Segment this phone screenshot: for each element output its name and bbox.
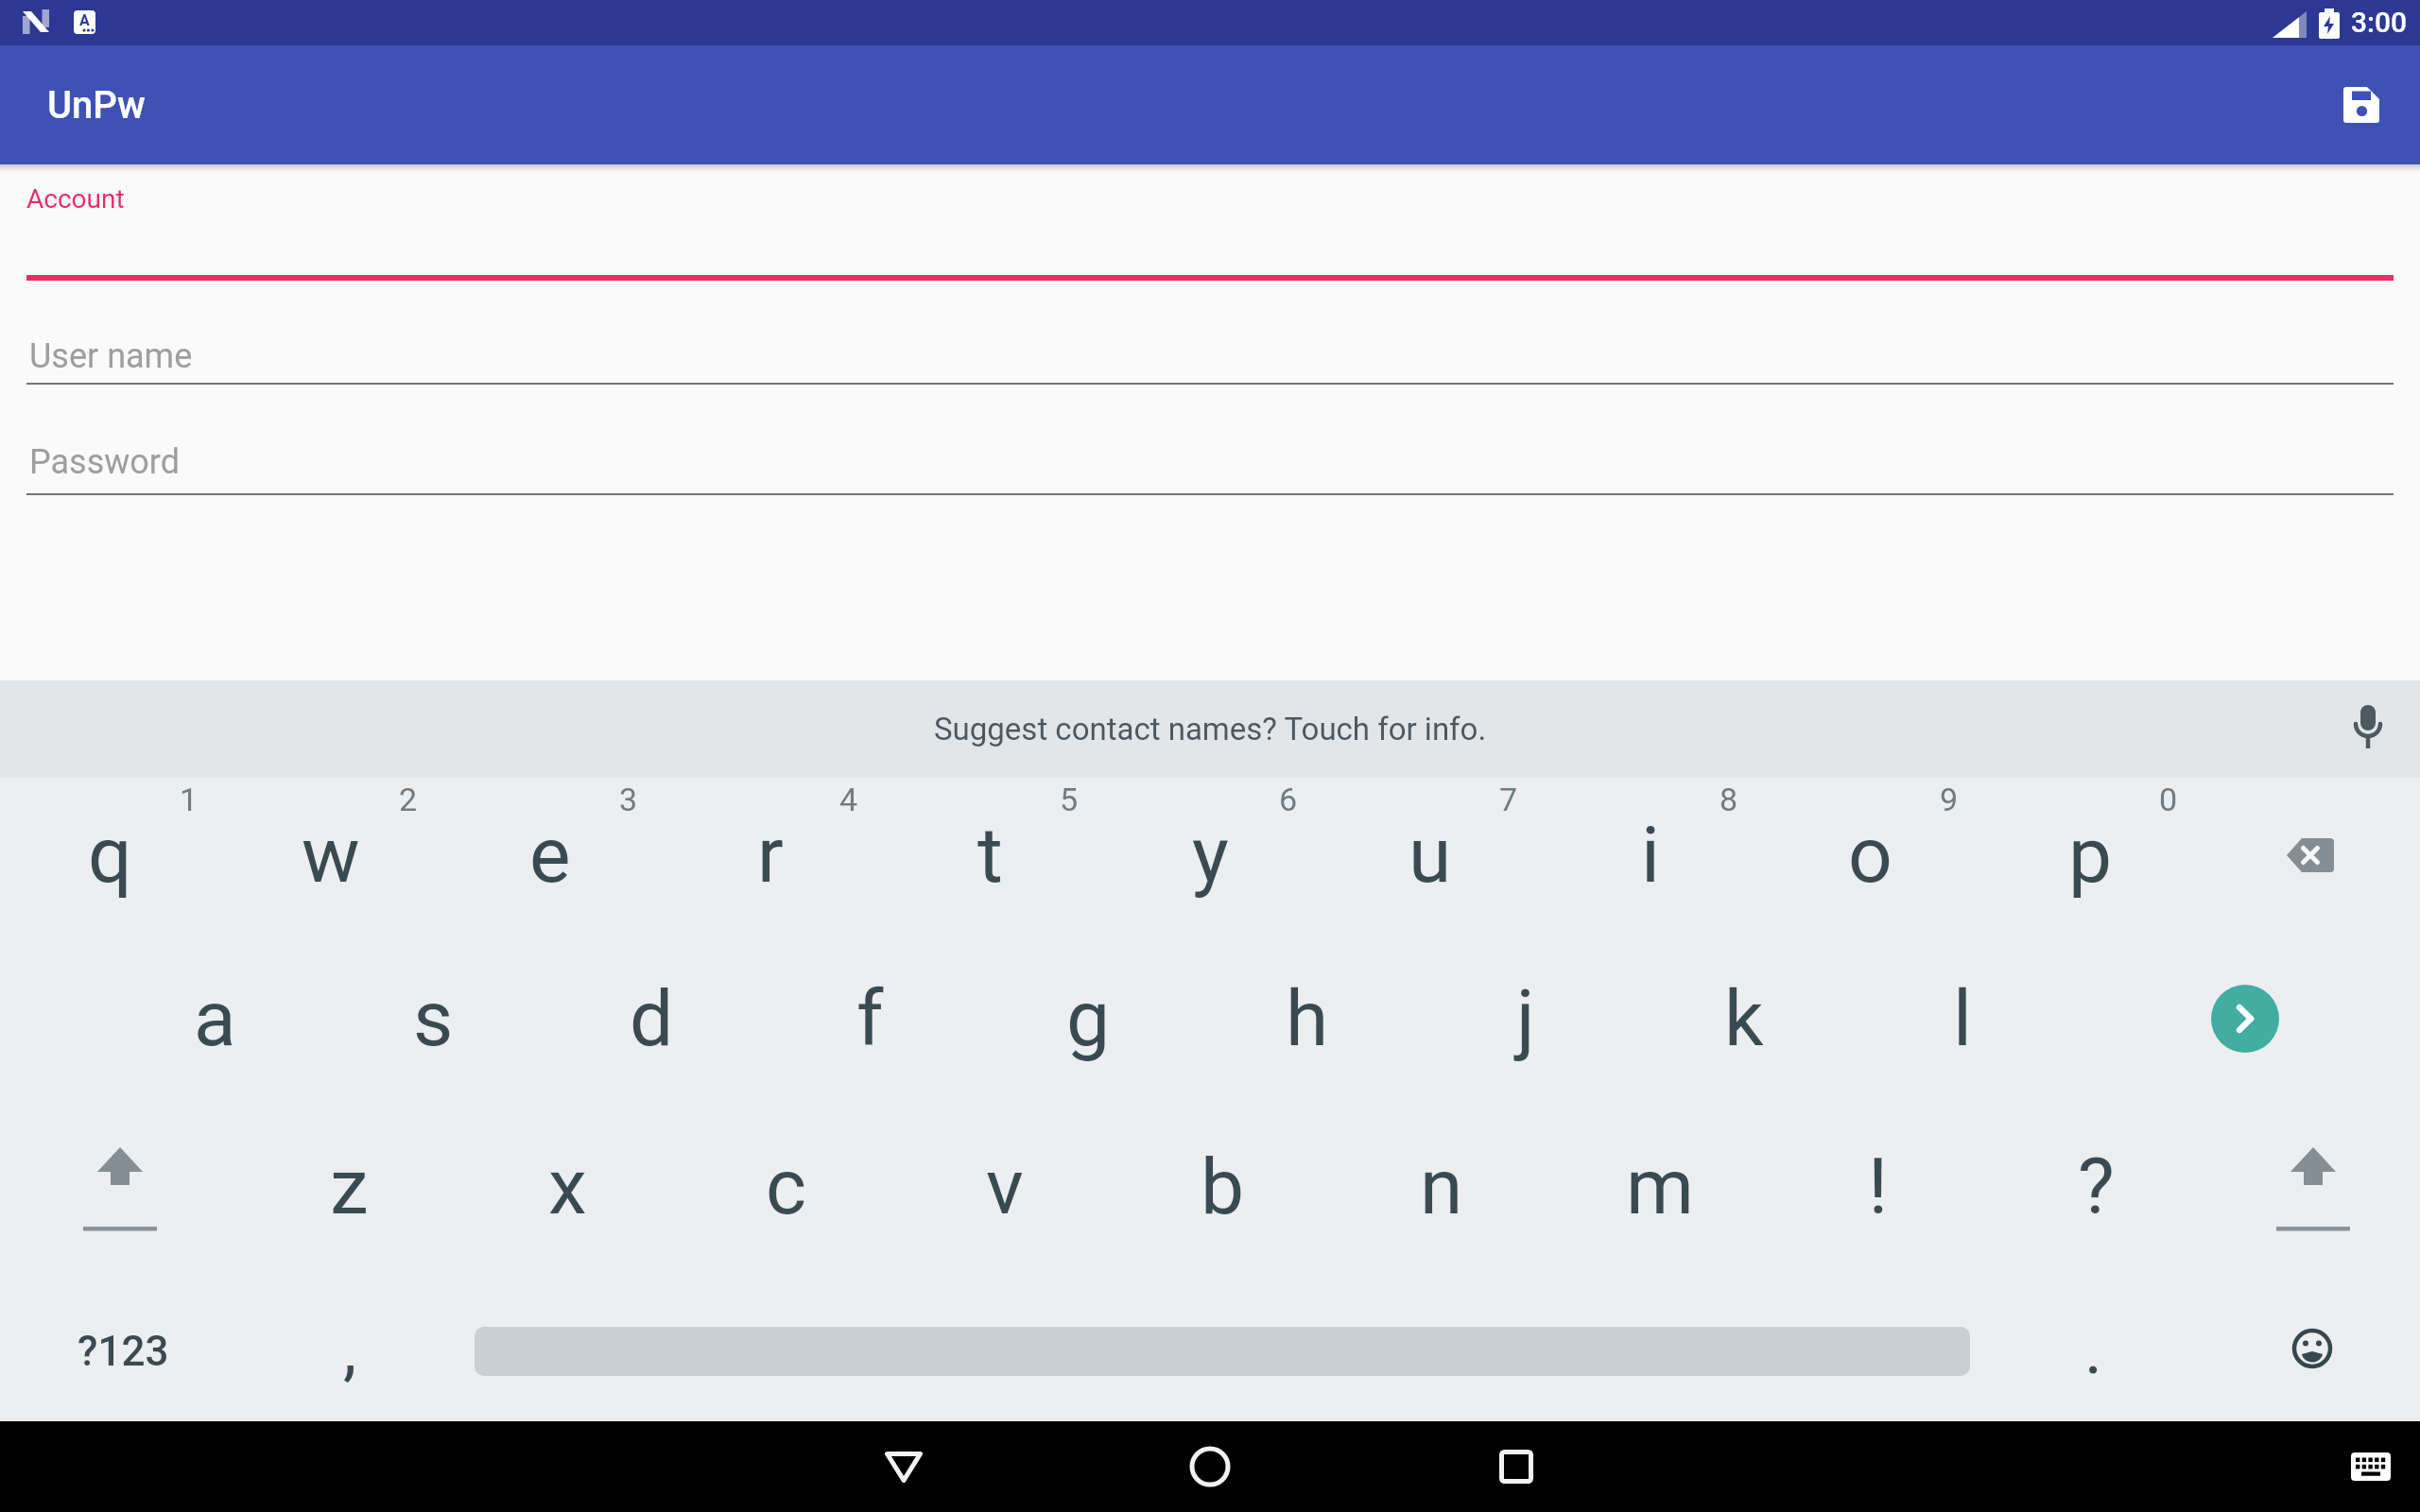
staticText: ?: [2078, 1142, 2115, 1232]
staticText: a: [194, 973, 236, 1064]
staticText: q: [88, 810, 132, 901]
button[interactable]: q: [0, 775, 220, 936]
staticText: User name: [29, 336, 193, 376]
button[interactable]: ?123: [14, 1271, 232, 1432]
button[interactable]: a: [105, 938, 325, 1099]
staticText: w: [302, 810, 360, 901]
staticText: c: [766, 1142, 806, 1232]
staticText: ?123: [78, 1327, 169, 1376]
button[interactable]: [847, 1421, 960, 1512]
button[interactable]: i: [1540, 775, 1760, 936]
button[interactable]: u: [1320, 775, 1540, 936]
button[interactable]: e: [440, 775, 660, 936]
button[interactable]: c: [676, 1107, 896, 1267]
staticText: Suggest contact names? Touch for info.: [934, 711, 1487, 747]
button[interactable]: [1153, 1421, 1267, 1512]
button[interactable]: y: [1100, 775, 1321, 936]
staticText: 5: [1060, 781, 1079, 818]
button[interactable]: j: [1415, 938, 1635, 1099]
staticText: v: [986, 1142, 1024, 1232]
button[interactable]: d: [542, 938, 762, 1099]
button[interactable]: [0, 170, 2420, 283]
staticText: o: [1848, 810, 1893, 901]
staticText: p: [2068, 810, 2113, 901]
staticText: ,: [343, 1310, 357, 1389]
button[interactable]: f: [760, 938, 980, 1099]
button[interactable]: [2204, 1107, 2420, 1267]
staticText: 3:00: [2351, 6, 2408, 39]
button[interactable]: n: [1331, 1107, 1551, 1267]
staticText: 7: [1499, 781, 1518, 818]
staticText: j: [1516, 973, 1535, 1064]
button[interactable]: p: [1980, 775, 2201, 936]
button[interactable]: b: [1113, 1107, 1333, 1267]
button[interactable]: o: [1760, 775, 1980, 936]
staticText: .: [2084, 1310, 2102, 1389]
button[interactable]: [2319, 1421, 2420, 1512]
button[interactable]: v: [894, 1107, 1115, 1267]
staticText: b: [1201, 1142, 1245, 1232]
button[interactable]: [2232, 1278, 2393, 1419]
staticText: s: [413, 973, 454, 1064]
button[interactable]: ?: [1986, 1107, 2206, 1267]
button[interactable]: ,: [274, 1283, 425, 1416]
button[interactable]: x: [458, 1107, 678, 1267]
staticText: 3: [619, 781, 638, 818]
button[interactable]: r: [660, 775, 880, 936]
button[interactable]: [2200, 775, 2420, 936]
staticText: x: [548, 1142, 587, 1232]
button[interactable]: !: [1768, 1107, 1988, 1267]
button[interactable]: l: [1852, 938, 2072, 1099]
staticText: m: [1626, 1142, 1694, 1232]
button[interactable]: t: [880, 775, 1100, 936]
button[interactable]: [2326, 70, 2396, 140]
staticText: l: [1953, 973, 1972, 1064]
staticText: 2: [399, 781, 418, 818]
button[interactable]: h: [1197, 938, 1417, 1099]
staticText: u: [1409, 810, 1452, 901]
button[interactable]: g: [978, 938, 1199, 1099]
staticText: A: [79, 11, 90, 29]
staticText: UnPw: [47, 83, 146, 128]
staticText: f: [856, 973, 884, 1064]
staticText: 0: [2159, 781, 2178, 818]
staticText: g: [1066, 973, 1111, 1064]
button[interactable]: [1460, 1421, 1573, 1512]
button[interactable]: [10, 1107, 230, 1267]
staticText: 1: [180, 781, 199, 818]
staticText: r: [757, 810, 784, 901]
staticText: h: [1286, 973, 1329, 1064]
staticText: 4: [839, 781, 858, 818]
button[interactable]: .: [2017, 1283, 2169, 1416]
staticText: !: [1868, 1142, 1889, 1232]
staticText: k: [1724, 973, 1764, 1064]
staticText: Account: [26, 183, 125, 215]
staticText: d: [630, 973, 674, 1064]
button[interactable]: k: [1633, 938, 1854, 1099]
staticText: z: [330, 1142, 369, 1232]
staticText: n: [1420, 1142, 1463, 1232]
staticText: 6: [1279, 781, 1298, 818]
staticText: Password: [29, 442, 181, 482]
staticText: 8: [1720, 781, 1738, 818]
button[interactable]: z: [239, 1107, 459, 1267]
staticText: y: [1192, 810, 1229, 901]
button[interactable]: w: [220, 775, 441, 936]
button[interactable]: Suggest contact names? Touch for info.: [0, 680, 2420, 778]
staticText: t: [977, 810, 1003, 901]
staticText: e: [529, 810, 571, 901]
button[interactable]: m: [1549, 1107, 1770, 1267]
staticText: i: [1641, 810, 1660, 901]
button[interactable]: [0, 423, 2420, 499]
button[interactable]: s: [323, 938, 544, 1099]
button[interactable]: [2169, 938, 2321, 1099]
staticText: 9: [1940, 781, 1959, 818]
button[interactable]: [0, 312, 2420, 387]
